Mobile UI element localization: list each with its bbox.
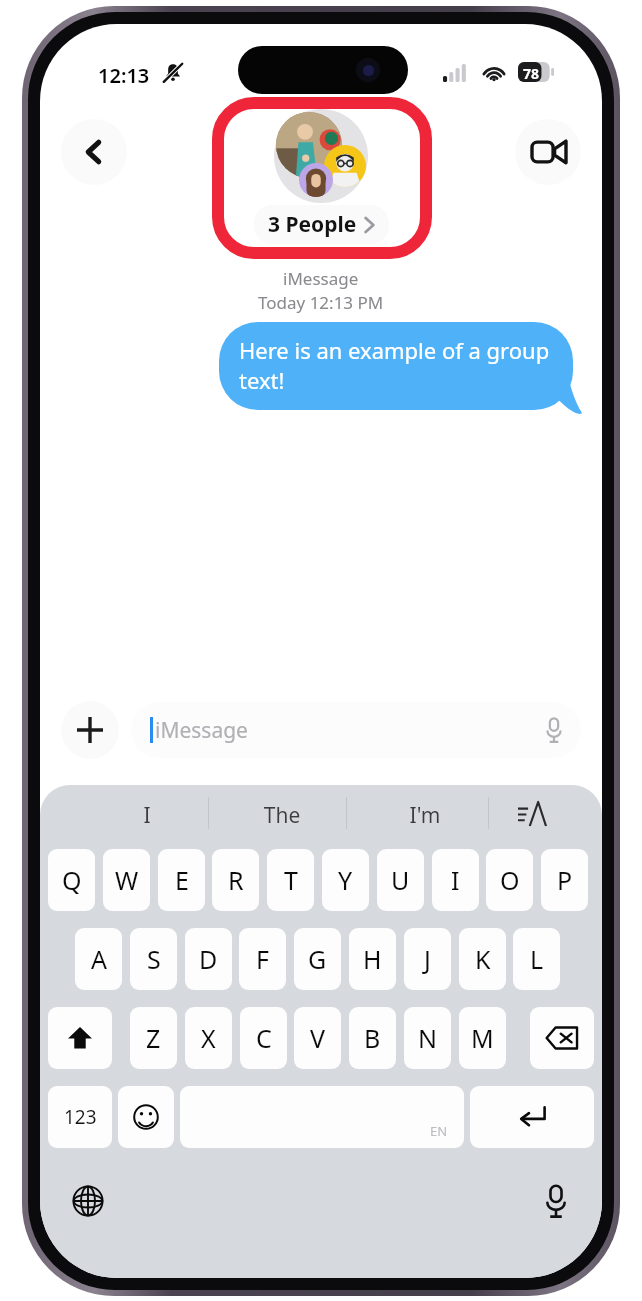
staticText: Z [146, 1021, 161, 1055]
staticText: Q [62, 863, 82, 897]
button[interactable]: I [432, 849, 479, 911]
button[interactable]: Back [61, 119, 127, 185]
staticText: C [256, 1021, 272, 1055]
button[interactable]: R [212, 849, 259, 911]
staticText: P [557, 863, 573, 897]
staticText: W [115, 863, 139, 897]
staticText: 78 [523, 64, 540, 83]
button[interactable]: U [377, 849, 424, 911]
button[interactable]: Backspace [530, 1007, 594, 1069]
button[interactable]: Change keyboard language [62, 1175, 114, 1227]
button[interactable]: B [349, 1007, 396, 1069]
button[interactable]: E [158, 849, 205, 911]
staticText: EN [430, 1122, 448, 1140]
staticText: iMessage [283, 267, 359, 290]
button[interactable]: Return [470, 1086, 594, 1148]
button[interactable]: 3 People [240, 109, 402, 244]
button[interactable]: S [130, 928, 177, 990]
button[interactable]: Dictate [530, 1175, 582, 1227]
button[interactable]: H [349, 928, 396, 990]
staticText: D [199, 942, 218, 976]
staticText: V [310, 1021, 326, 1055]
button[interactable]: M [459, 1007, 506, 1069]
staticText: Today 12:13 PM [258, 291, 384, 314]
staticText: O [500, 863, 520, 897]
staticText: Y [338, 863, 353, 897]
staticText: S [147, 942, 161, 976]
button[interactable]: Z [130, 1007, 177, 1069]
staticText: J [424, 942, 431, 976]
button[interactable]: K [459, 928, 506, 990]
staticText: U [391, 863, 410, 897]
button[interactable]: Q [48, 849, 95, 911]
button[interactable]: iMessage [131, 702, 581, 758]
staticText: K [475, 942, 491, 976]
button[interactable]: L [513, 928, 560, 990]
button[interactable]: I'm [395, 801, 455, 830]
staticText: G [308, 942, 327, 976]
button[interactable]: Formatting [508, 795, 556, 833]
button[interactable]: Add attachment [61, 701, 119, 759]
button[interactable]: G [294, 928, 341, 990]
button[interactable]: The [247, 801, 317, 830]
button[interactable]: Numbers [48, 1086, 112, 1148]
button[interactable]: N [404, 1007, 451, 1069]
staticText: L [530, 942, 544, 976]
button[interactable]: W [103, 849, 150, 911]
staticText: 123 [64, 1104, 97, 1130]
staticText: X [201, 1021, 216, 1055]
button[interactable]: X [185, 1007, 232, 1069]
button[interactable]: A [75, 928, 122, 990]
button[interactable]: J [404, 928, 451, 990]
staticText: R [228, 863, 244, 897]
staticText: T [284, 863, 298, 897]
button[interactable]: F [239, 928, 286, 990]
staticText: I [451, 863, 460, 897]
button[interactable]: P [541, 849, 588, 911]
button[interactable]: FaceTime video call [515, 119, 581, 185]
button[interactable]: Emoji [118, 1086, 174, 1148]
staticText: E [175, 863, 189, 897]
staticText: F [256, 942, 269, 976]
staticText: iMessage [155, 716, 248, 745]
staticText: M [471, 1021, 494, 1055]
button[interactable]: D [185, 928, 232, 990]
staticText: H [363, 942, 382, 976]
button[interactable]: Shift [48, 1007, 112, 1069]
staticText: 12:13 [98, 62, 150, 89]
button[interactable]: V [294, 1007, 341, 1069]
button[interactable]: O [486, 849, 533, 911]
button[interactable]: I [118, 801, 176, 830]
staticText: N [418, 1021, 438, 1055]
staticText: A [91, 942, 107, 976]
staticText: Here is an example of a group text! [239, 335, 565, 395]
staticText: 3 People [268, 210, 357, 239]
button[interactable]: Y [322, 849, 369, 911]
button[interactable]: T [267, 849, 314, 911]
button[interactable]: EN [180, 1086, 464, 1148]
staticText: B [364, 1021, 381, 1055]
button[interactable]: C [240, 1007, 287, 1069]
